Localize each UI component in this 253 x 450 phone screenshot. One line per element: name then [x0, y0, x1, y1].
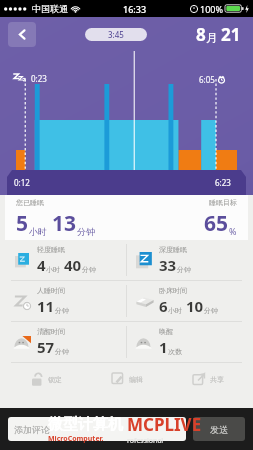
staticText: 锁定: [48, 375, 62, 384]
button[interactable]: 编辑: [86, 363, 167, 395]
staticText: 3:45: [108, 29, 124, 40]
button[interactable]: 深度睡眠: [127, 240, 248, 280]
button[interactable]: 卧床时间: [127, 281, 248, 321]
staticText: 卧床时间: [159, 286, 187, 295]
staticText: 分钟: [55, 347, 69, 356]
staticText: 分钟: [177, 265, 191, 274]
staticText: 10: [186, 296, 204, 316]
staticText: 21: [221, 23, 241, 46]
staticText: 微型计算机: [48, 415, 123, 434]
staticText: MicroComputer.: [48, 434, 104, 444]
staticText: 1: [159, 337, 168, 357]
button[interactable]: 锁定: [5, 363, 86, 395]
button[interactable]: 共享: [167, 363, 248, 395]
staticText: rofessional: [127, 436, 164, 446]
staticText: 发送: [210, 424, 228, 435]
staticText: 6:23: [215, 177, 231, 188]
staticText: %: [229, 225, 237, 237]
staticText: 65: [204, 209, 229, 238]
staticText: 深度睡眠: [159, 245, 187, 254]
staticText: 人睡时间: [37, 286, 65, 295]
staticText: 100%: [200, 3, 223, 15]
button[interactable]: 人睡时间: [5, 281, 126, 321]
staticText: 分钟: [77, 226, 95, 237]
staticText: 分钟: [55, 306, 69, 315]
staticText: 13: [52, 209, 77, 238]
staticText: 次数: [168, 347, 182, 356]
button[interactable]: 唤醒: [127, 322, 248, 362]
staticText: 中国联通: [32, 3, 68, 14]
staticText: 8: [196, 23, 206, 46]
staticText: MCPLIVE: [127, 413, 202, 436]
staticText: 小时: [168, 306, 182, 315]
staticText: 6: [159, 296, 168, 316]
staticText: 6:05: [199, 74, 215, 85]
staticText: 16:33: [123, 3, 147, 15]
staticText: 33: [159, 255, 177, 275]
staticText: 您已睡眠: [16, 198, 44, 207]
button[interactable]: 添加评论: [8, 417, 186, 441]
staticText: 睡眠目标: [209, 198, 237, 207]
staticText: 5: [16, 209, 29, 238]
button[interactable]: 清醒时间: [5, 322, 126, 362]
staticText: 40: [64, 255, 82, 275]
staticText: 共享: [210, 375, 224, 384]
staticText: 11: [37, 296, 55, 316]
staticText: 0:23: [31, 73, 47, 84]
staticText: 0:12: [14, 177, 30, 188]
staticText: 57: [37, 337, 55, 357]
staticText: 分钟: [82, 265, 96, 274]
button[interactable]: 发送: [193, 417, 245, 441]
button[interactable]: Back: [8, 22, 36, 47]
staticText: 分钟: [204, 306, 218, 315]
staticText: 月: [206, 30, 218, 45]
staticText: 编辑: [129, 375, 143, 384]
staticText: 唤醒: [159, 327, 173, 336]
staticText: 4: [37, 255, 46, 275]
staticText: 添加评论: [14, 424, 50, 435]
button[interactable]: 轻度睡眠: [5, 240, 126, 280]
staticText: 小时: [29, 226, 47, 237]
staticText: 轻度睡眠: [37, 245, 65, 254]
staticText: 清醒时间: [37, 327, 65, 336]
staticText: 小时: [46, 265, 60, 274]
